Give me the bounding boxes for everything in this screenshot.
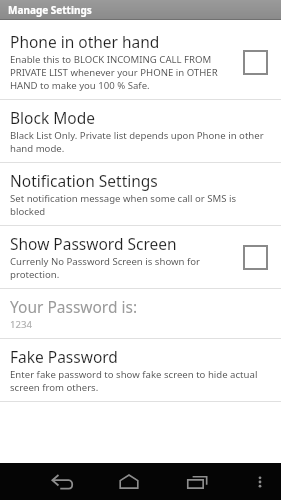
- button[interactable]: Block Mode: [0, 100, 281, 162]
- button[interactable]: More options: [243, 465, 277, 499]
- button[interactable]: Fake Password: [0, 339, 281, 401]
- staticText: Fake Password: [10, 346, 118, 367]
- staticText: Set notification message when some call …: [10, 192, 273, 218]
- staticText: Show Password Screen: [10, 233, 177, 254]
- button[interactable]: Home: [107, 463, 151, 500]
- button[interactable]: Show Password Screen: [237, 239, 273, 275]
- staticText: 1234: [10, 318, 32, 331]
- staticText: Notification Settings: [10, 170, 158, 191]
- staticText: Phone in other hand: [10, 31, 160, 52]
- button[interactable]: Phone in other hand: [237, 44, 273, 80]
- button[interactable]: Phone in other hand: [0, 24, 281, 99]
- staticText: Manage Settings: [8, 3, 92, 17]
- button[interactable]: Show Password Screen: [0, 226, 281, 288]
- button[interactable]: Your Password is:: [0, 289, 281, 338]
- staticText: Currenly No Password Screen is shown for…: [10, 255, 229, 281]
- button[interactable]: Back: [40, 463, 84, 500]
- staticText: Block Mode: [10, 107, 95, 128]
- button[interactable]: Recent apps: [175, 463, 219, 500]
- staticText: Your Password is:: [10, 296, 138, 317]
- staticText: Enter fake password to show fake screen …: [10, 368, 273, 394]
- staticText: Black List Only. Private list depends up…: [10, 129, 273, 155]
- button[interactable]: Notification Settings: [0, 163, 281, 225]
- staticText: Enable this to BLOCK INCOMING CALL FROM …: [10, 53, 229, 92]
